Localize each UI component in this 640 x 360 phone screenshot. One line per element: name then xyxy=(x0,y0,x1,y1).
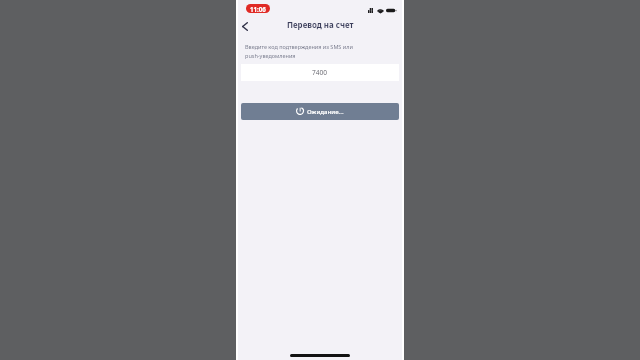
button[interactable]: 11:06 xyxy=(246,4,270,13)
button[interactable]: 7400 xyxy=(241,64,399,81)
staticText: Перевод на счет xyxy=(287,20,354,31)
button[interactable]: Back xyxy=(238,19,252,33)
other: Battery xyxy=(386,8,396,13)
button[interactable]: Ожидание... xyxy=(241,103,399,120)
staticText: 11:06 xyxy=(250,5,266,13)
staticText: Ожидание... xyxy=(307,107,344,115)
staticText: 7400 xyxy=(312,68,328,77)
staticText: Введите код подтверждения из SMS или pus… xyxy=(245,43,353,59)
other: Wi-Fi xyxy=(377,6,384,13)
other: Cellular signal xyxy=(368,8,373,13)
